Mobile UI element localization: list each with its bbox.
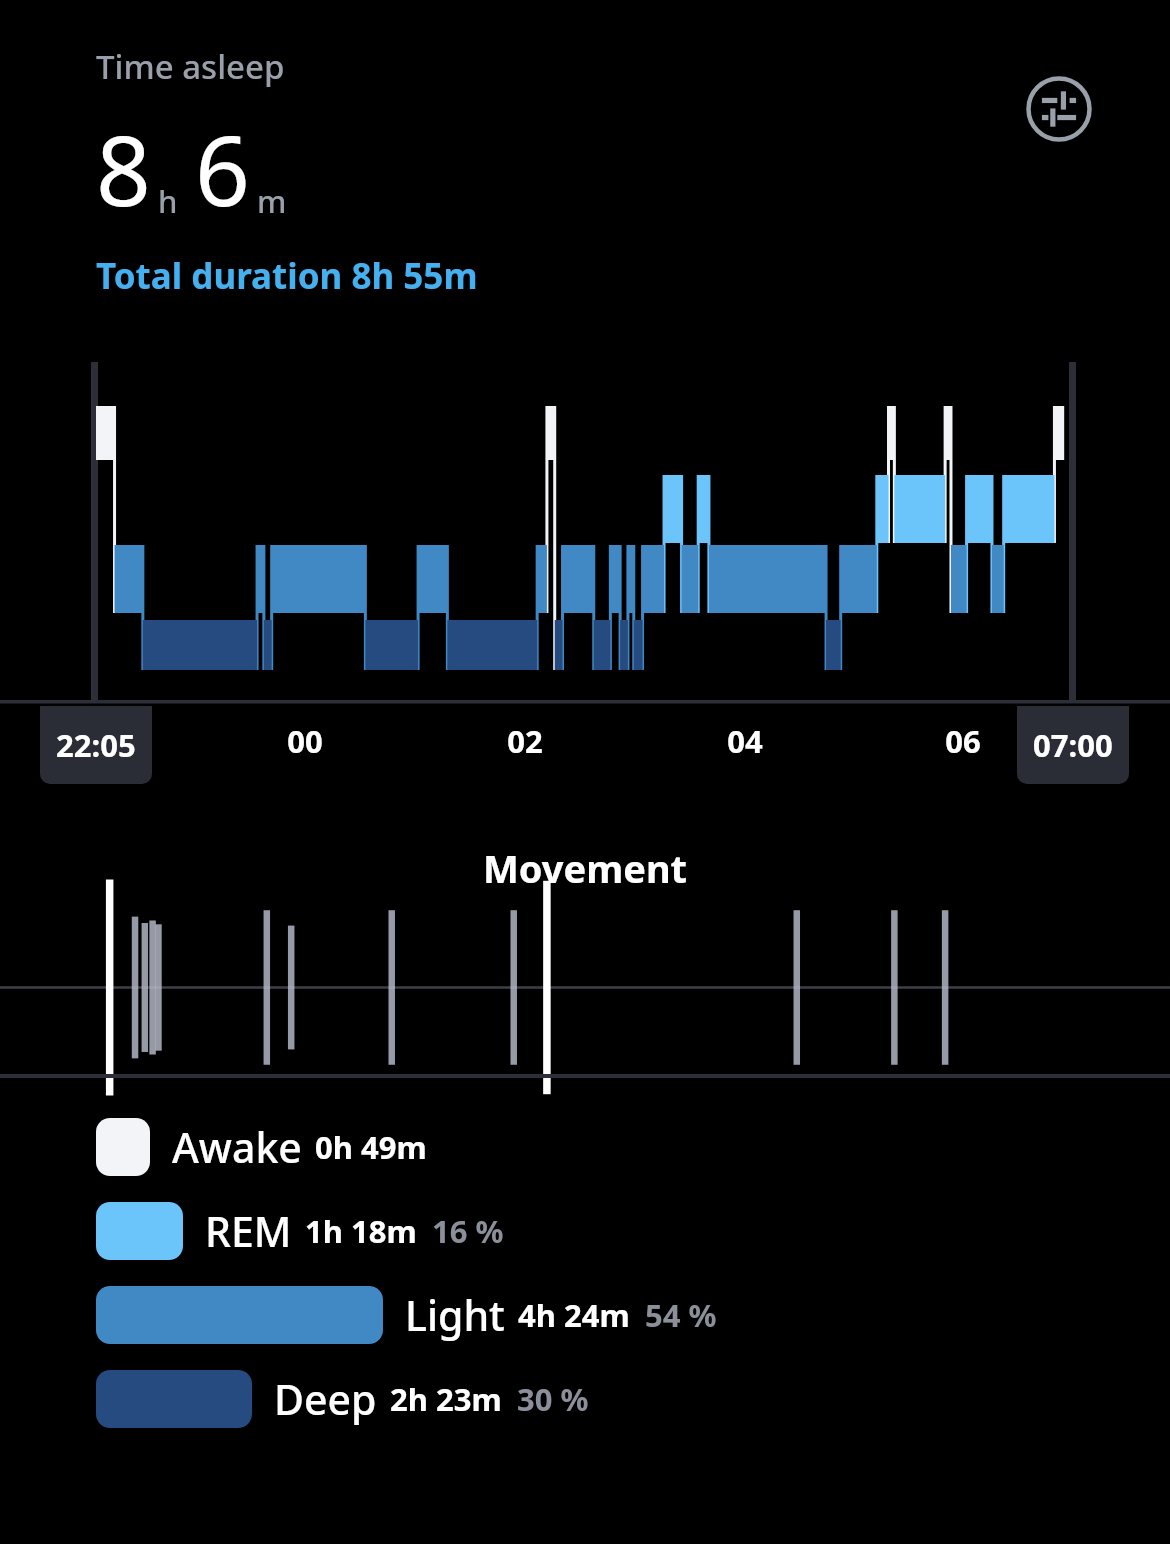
button[interactable]: Light xyxy=(96,1286,1170,1344)
staticText: m xyxy=(257,180,287,222)
staticText: 16 % xyxy=(432,1210,504,1252)
staticText: 54 % xyxy=(645,1294,717,1336)
staticText: Total duration 8h 55m xyxy=(96,252,478,300)
staticText: Time asleep xyxy=(96,44,285,89)
staticText: 07:00 xyxy=(1033,724,1113,766)
staticText: 8 xyxy=(96,103,151,234)
staticText: 04 xyxy=(727,720,763,762)
staticText: 06 xyxy=(945,720,981,762)
staticText: 6 xyxy=(195,103,250,234)
button[interactable]: REM xyxy=(96,1202,1170,1260)
staticText: Light xyxy=(405,1287,505,1343)
staticText: Movement xyxy=(0,842,1170,894)
staticText: 00 xyxy=(287,720,323,762)
staticText: 4h 24m xyxy=(518,1294,630,1336)
staticText: 22:05 xyxy=(56,724,136,766)
staticText: 0h 49m xyxy=(315,1126,427,1168)
staticText: Deep xyxy=(274,1371,377,1427)
staticText: 30 % xyxy=(517,1378,589,1420)
button[interactable]: Deep xyxy=(96,1370,1170,1428)
staticText: 02 xyxy=(507,720,543,762)
button[interactable]: Sleep settings xyxy=(1026,76,1092,142)
staticText: REM xyxy=(205,1203,292,1259)
staticText: h xyxy=(158,180,178,222)
button[interactable]: Awake xyxy=(96,1118,1170,1176)
staticText: Awake xyxy=(172,1119,302,1175)
staticText: 2h 23m xyxy=(390,1378,502,1420)
staticText: 1h 18m xyxy=(305,1210,417,1252)
